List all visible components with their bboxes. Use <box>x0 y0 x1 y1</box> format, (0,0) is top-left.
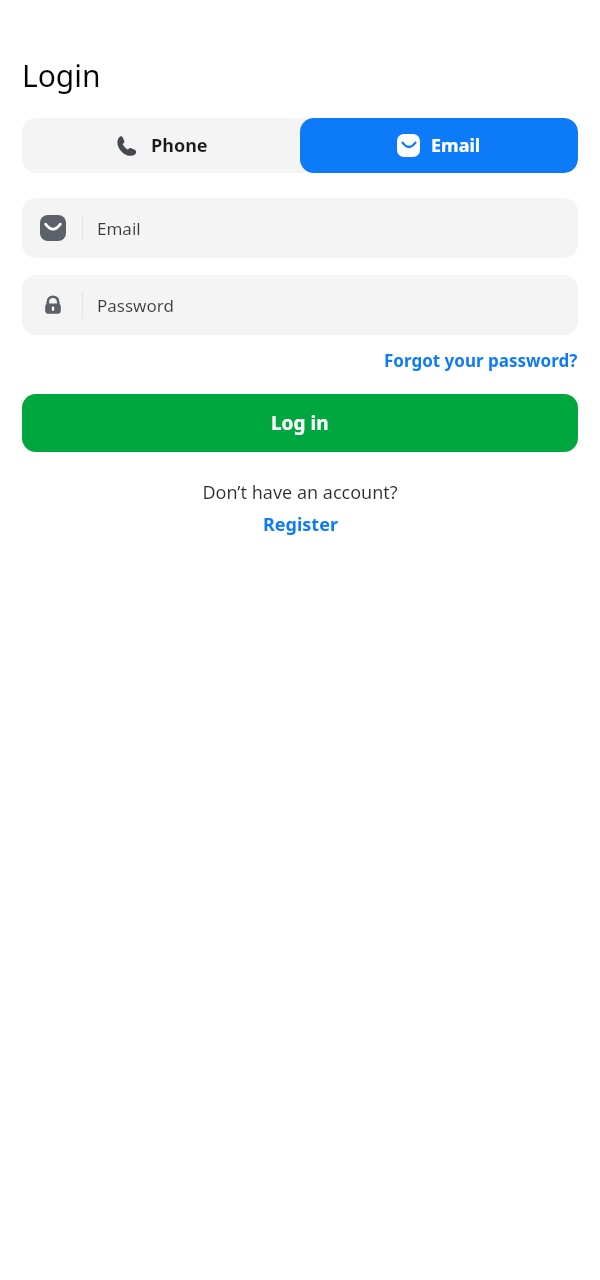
staticText: Log in <box>271 410 329 436</box>
staticText: Email <box>97 217 141 240</box>
staticText: Don’t have an account? <box>202 480 398 505</box>
button[interactable]: Password <box>22 275 578 335</box>
button[interactable]: Email <box>22 198 578 258</box>
staticText: Password <box>97 294 174 317</box>
button[interactable]: Register <box>263 510 338 539</box>
staticText: Phone <box>151 133 208 158</box>
button[interactable]: Phone <box>22 118 300 173</box>
button[interactable]: Email <box>300 118 578 173</box>
staticText: Email <box>431 133 481 158</box>
staticText: Register <box>263 512 338 537</box>
button[interactable]: Forgot your password? <box>384 345 578 376</box>
staticText: Login <box>22 55 101 96</box>
button[interactable]: Log in <box>22 394 578 452</box>
staticText: Forgot your password? <box>384 349 578 372</box>
